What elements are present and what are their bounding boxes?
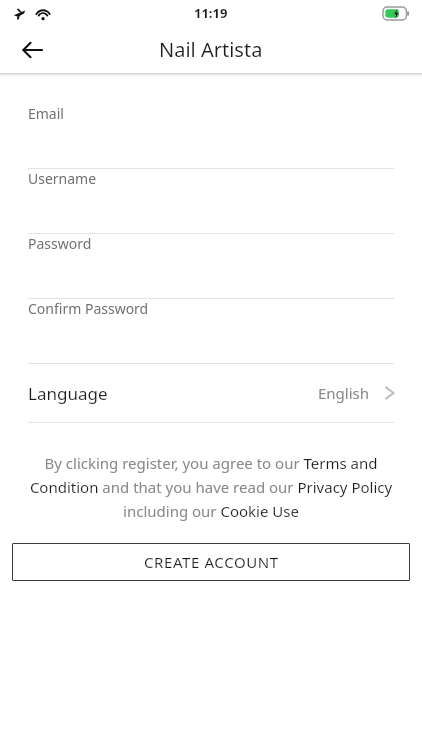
staticText: English [318,383,370,403]
staticText: CREATE ACCOUNT [144,552,279,572]
button[interactable]: CREATE ACCOUNT [12,543,410,581]
button[interactable]: Confirm Password [0,299,422,364]
staticText: 11:19 [194,4,228,22]
staticText: Language [28,382,108,405]
staticText: Email [28,104,64,123]
staticText: Nail Artista [159,36,263,63]
button[interactable]: Password [0,234,422,299]
staticText: Confirm Password [28,299,149,318]
button[interactable]: By clicking register, you agree to our T… [22,453,400,521]
button[interactable]: Language [0,364,422,422]
staticText: By clicking register, you agree to our T… [22,453,400,521]
button[interactable]: Back [8,26,56,73]
staticText: Password [28,234,92,253]
staticText: Username [28,169,97,188]
button[interactable]: Username [0,169,422,234]
button[interactable]: Email [0,104,422,169]
